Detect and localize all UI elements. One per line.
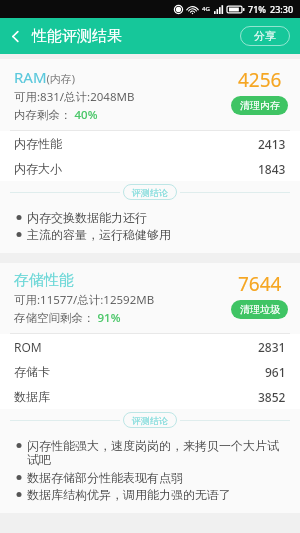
staticText: 4256 <box>238 67 282 93</box>
button[interactable]: 分享 <box>240 26 290 46</box>
staticText: 1843 <box>258 161 286 177</box>
staticText: 主流的容量，运行稳健够用 <box>27 227 171 242</box>
button[interactable]: ROM <box>0 334 300 359</box>
staticText: 4G <box>202 5 210 13</box>
staticText: RAM(内存) <box>14 67 76 87</box>
staticText: 分享 <box>254 29 276 43</box>
staticText: 数据库结构优异，调用能力强的无语了 <box>27 487 231 502</box>
staticText: 存储卡 <box>14 364 50 379</box>
staticText: 存储性能 <box>14 271 74 290</box>
button[interactable]: 内存大小 <box>0 156 300 181</box>
staticText: 清理垃圾 <box>240 303 280 316</box>
staticText: 评测结论 <box>132 415 168 426</box>
staticText: 可用:831/总计:2048MB <box>14 89 135 105</box>
staticText: 性能评测结果 <box>32 27 122 46</box>
staticText: 内存大小 <box>14 161 62 176</box>
staticText: 内存性能 <box>14 136 62 151</box>
staticText: ROM <box>14 339 42 355</box>
staticText: 961 <box>265 364 286 380</box>
staticText: 数据存储部分性能表现有点弱 <box>27 470 183 485</box>
button[interactable]: 清理垃圾 <box>231 300 288 319</box>
staticText: 2831 <box>258 339 286 355</box>
staticText: 7644 <box>238 271 282 297</box>
button[interactable]: 存储卡 <box>0 359 300 384</box>
staticText: 71% <box>248 3 266 15</box>
button[interactable]: 清理内存 <box>231 96 288 115</box>
staticText: 内存交换数据能力还行 <box>27 210 147 225</box>
button[interactable]: 数据库 <box>0 384 300 409</box>
staticText: 2413 <box>258 136 286 152</box>
staticText: 清理内存 <box>240 99 280 112</box>
staticText: 评测结论 <box>132 187 168 198</box>
button[interactable]: 内存性能 <box>0 131 300 156</box>
button[interactable]: Back <box>0 21 30 51</box>
staticText: 3852 <box>258 389 286 405</box>
staticText: 23:30 <box>270 3 294 15</box>
staticText: 闪存性能强大，速度岗岗的，来拷贝一个大片试试吧 <box>27 438 288 468</box>
staticText: 数据库 <box>14 389 50 404</box>
staticText: 内存剩余： 40% <box>14 107 98 123</box>
staticText: 可用:11577/总计:12592MB <box>14 292 155 308</box>
staticText: 存储空间剩余： 91% <box>14 310 121 326</box>
